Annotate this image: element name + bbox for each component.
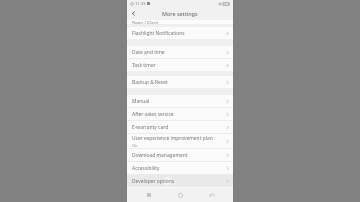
button[interactable]: Beep / Flash <box>127 20 233 24</box>
button[interactable]: Back <box>127 7 140 20</box>
staticText: Date and time <box>132 49 165 56</box>
staticText: 11:33 <box>135 1 146 7</box>
button[interactable]: Developer options <box>127 175 233 187</box>
button[interactable]: After-sales service <box>127 108 233 120</box>
button[interactable]: Date and time <box>127 46 233 58</box>
button[interactable]: Flashlight Notifications <box>127 27 233 39</box>
staticText: More settings <box>162 10 198 17</box>
staticText: Accessibility <box>132 165 160 172</box>
staticText: Manual <box>132 98 150 105</box>
staticText: E-warranty card <box>132 124 169 131</box>
staticText: Beep / Flash <box>132 20 159 24</box>
staticText: User experience improvement plan <box>132 135 213 142</box>
button[interactable]: Task timer <box>127 59 233 71</box>
button[interactable]: Download management <box>127 149 233 161</box>
staticText: Download management <box>132 152 188 159</box>
staticText: Flashlight Notifications <box>132 30 185 37</box>
button[interactable]: Home <box>170 188 190 202</box>
button[interactable]: E-warranty card <box>127 121 233 133</box>
button[interactable]: User experience improvement plan <box>127 134 233 148</box>
button[interactable]: Backup & Reset <box>127 76 233 88</box>
button[interactable]: Recents <box>139 188 159 202</box>
staticText: Developer options <box>132 178 175 185</box>
button[interactable]: Manual <box>127 95 233 107</box>
staticText: Backup & Reset <box>132 79 168 86</box>
staticText: Task timer <box>132 62 156 69</box>
staticText: On <box>132 143 138 148</box>
button[interactable]: Back <box>202 188 222 202</box>
button[interactable]: Accessibility <box>127 162 233 174</box>
staticText: After-sales service <box>132 111 174 118</box>
